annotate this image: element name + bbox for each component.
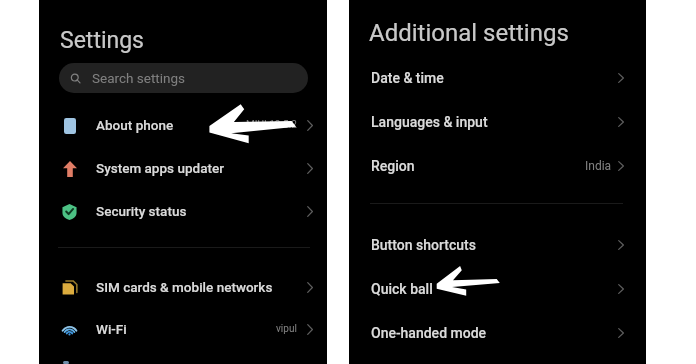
staticText: MIUI 12.5.2 xyxy=(246,119,297,131)
staticText: Security status xyxy=(96,203,187,219)
staticText: Settings xyxy=(60,27,144,54)
button[interactable]: One-handed mode xyxy=(349,318,646,348)
button[interactable]: Languages & input xyxy=(349,107,646,137)
button[interactable]: Search settings xyxy=(59,63,308,93)
staticText: Quick ball xyxy=(371,281,433,297)
staticText: Additional settings xyxy=(369,19,569,47)
button[interactable]: Security status xyxy=(39,195,327,227)
button[interactable]: Button shortcuts xyxy=(349,230,646,260)
other: Annotation arrow xyxy=(39,0,327,364)
button[interactable]: Wi-Fi xyxy=(39,313,327,345)
button[interactable]: Quick ball xyxy=(349,274,646,304)
staticText: Button shortcuts xyxy=(371,237,476,253)
staticText: Search settings xyxy=(92,70,186,86)
staticText: vipul xyxy=(276,323,297,335)
button[interactable]: System apps updater xyxy=(39,152,327,184)
staticText: Languages & input xyxy=(371,114,488,130)
staticText: Region xyxy=(371,158,415,174)
staticText: About phone xyxy=(96,117,174,133)
button[interactable]: Date & time xyxy=(349,63,646,93)
button[interactable]: About phone xyxy=(39,109,327,141)
staticText: SIM cards & mobile networks xyxy=(96,279,273,295)
staticText: Wi-Fi xyxy=(96,321,127,337)
other: Annotation arrow xyxy=(349,0,646,364)
button[interactable]: SIM cards & mobile networks xyxy=(39,271,327,303)
staticText: India xyxy=(585,159,612,173)
staticText: One-handed mode xyxy=(371,325,487,341)
staticText: Date & time xyxy=(371,70,444,86)
button[interactable]: Region xyxy=(349,151,646,181)
staticText: System apps updater xyxy=(96,160,224,176)
